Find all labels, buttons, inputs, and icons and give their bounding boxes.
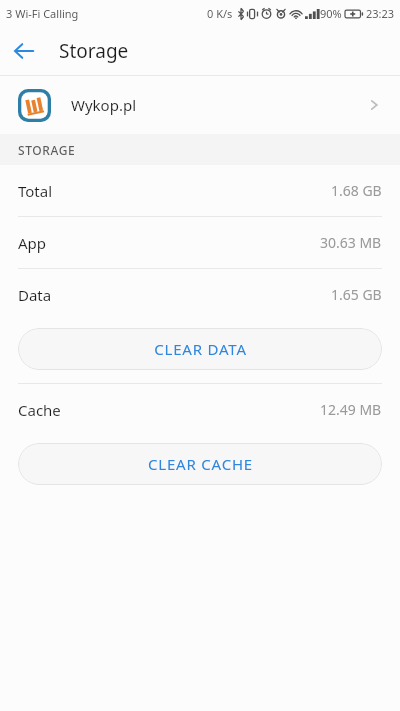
staticText: Cache	[18, 400, 61, 420]
button[interactable]: Total	[0, 165, 400, 216]
button[interactable]: Cache	[0, 384, 400, 435]
staticText: Data	[18, 285, 52, 305]
staticText: CLEAR CACHE	[148, 454, 253, 474]
staticText: 30.63 MB	[320, 233, 382, 252]
staticText: 0 K/s	[207, 6, 233, 21]
staticText: 1.65 GB	[331, 285, 382, 304]
staticText: 23:23	[366, 6, 395, 21]
button[interactable]: CLEAR CACHE	[18, 443, 382, 485]
button[interactable]: Back	[0, 27, 48, 75]
staticText: Wykop.pl	[71, 95, 137, 115]
staticText: Total	[18, 181, 53, 201]
staticText: CLEAR DATA	[154, 339, 247, 359]
staticText: 1.68 GB	[331, 181, 382, 200]
staticText: App	[18, 233, 47, 253]
button[interactable]: CLEAR DATA	[18, 328, 382, 370]
staticText: 12.49 MB	[320, 400, 382, 419]
staticText: 3 Wi-Fi Calling	[6, 6, 79, 21]
staticText: 90%	[320, 6, 342, 21]
staticText: Storage	[59, 38, 129, 64]
button[interactable]: Wykop.pl	[0, 76, 400, 134]
button[interactable]: App	[0, 217, 400, 268]
staticText: STORAGE	[18, 142, 76, 158]
button[interactable]: Data	[0, 269, 400, 320]
